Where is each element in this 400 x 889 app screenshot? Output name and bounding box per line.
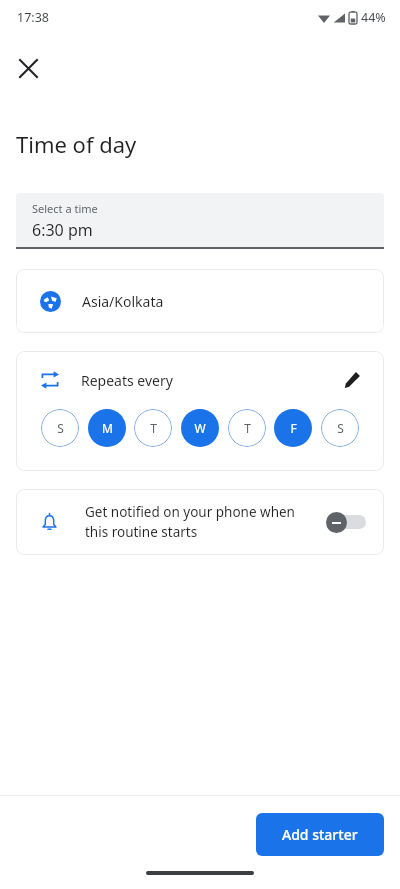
button[interactable]: M	[88, 409, 126, 447]
button[interactable]: Notification toggle	[326, 510, 366, 534]
button[interactable]: F	[274, 409, 312, 447]
staticText: Time of day	[16, 129, 137, 159]
staticText: Select a time	[32, 201, 98, 216]
button[interactable]: T	[134, 409, 172, 447]
staticText: Asia/Kolkata	[82, 292, 164, 311]
button[interactable]: T	[228, 409, 266, 447]
button[interactable]: S	[41, 409, 79, 447]
staticText: T	[150, 420, 157, 436]
button[interactable]: Asia/Kolkata	[16, 269, 384, 333]
staticText: S	[337, 420, 344, 436]
staticText: F	[290, 420, 297, 436]
staticText: M	[102, 420, 113, 436]
staticText: 6:30 pm	[32, 219, 93, 241]
button[interactable]: S	[321, 409, 359, 447]
staticText: 44%	[361, 9, 386, 26]
staticText: Repeats every	[81, 371, 173, 390]
staticText: W	[194, 420, 206, 436]
staticText: Get notified on your phone when this rou…	[85, 503, 316, 541]
staticText: Add starter	[282, 825, 358, 844]
button[interactable]: Close	[8, 48, 48, 88]
button[interactable]: Get notified on your phone when this rou…	[16, 489, 384, 555]
staticText: S	[57, 420, 64, 436]
button[interactable]: Add starter	[256, 813, 384, 856]
staticText: 17:38	[17, 9, 49, 26]
staticText: T	[244, 420, 251, 436]
button[interactable]: Edit	[334, 362, 370, 398]
button[interactable]: Select a time	[16, 193, 384, 249]
button[interactable]: W	[181, 409, 219, 447]
